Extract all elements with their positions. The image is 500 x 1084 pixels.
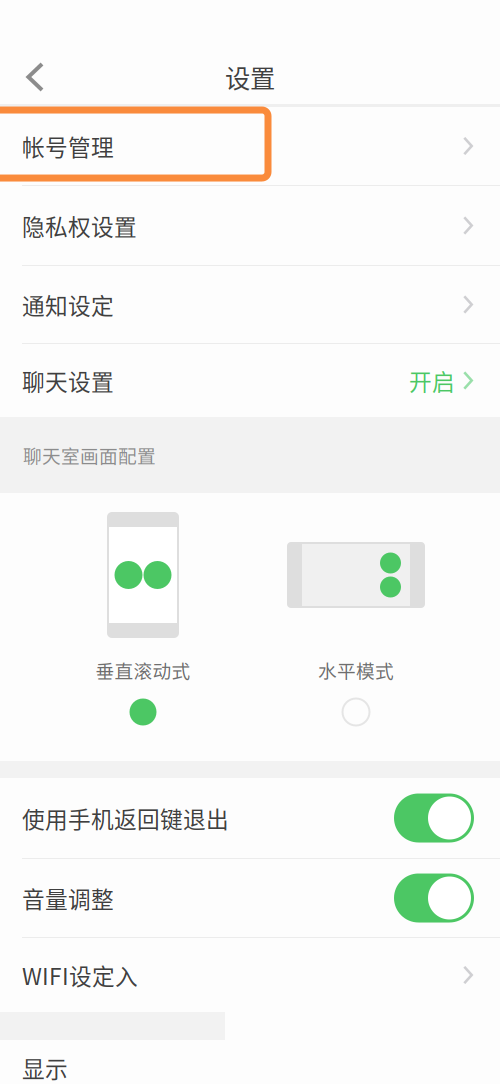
staticText: 开启: [409, 364, 455, 397]
staticText: WIFI设定入: [22, 959, 138, 991]
button[interactable]: 使用手机返回键退出: [0, 778, 500, 858]
button[interactable]: 帐号管理: [0, 107, 500, 185]
staticText: 帐号管理: [22, 130, 114, 162]
staticText: 聊天室画面配置: [23, 441, 156, 468]
staticText: 使用手机返回键退出: [22, 802, 229, 834]
staticText: 水平模式: [318, 656, 394, 683]
staticText: 显示: [22, 1051, 68, 1084]
staticText: 隐私权设置: [22, 209, 137, 242]
staticText: 聊天设置: [22, 364, 114, 397]
button[interactable]: 垂直滚动式: [0, 493, 286, 761]
button[interactable]: 聊天设置: [0, 344, 500, 417]
staticText: 通知设定: [22, 288, 114, 321]
button[interactable]: 水平模式: [286, 493, 426, 761]
button[interactable]: Back: [0, 47, 70, 107]
staticText: 设置: [225, 59, 275, 95]
staticText: 垂直滚动式: [95, 656, 190, 683]
staticText: 音量调整: [22, 882, 114, 914]
button[interactable]: WIFI设定入: [0, 938, 500, 1012]
button[interactable]: 隐私权设置: [0, 186, 500, 265]
button[interactable]: 音量调整: [0, 859, 500, 937]
button[interactable]: 通知设定: [0, 266, 500, 343]
